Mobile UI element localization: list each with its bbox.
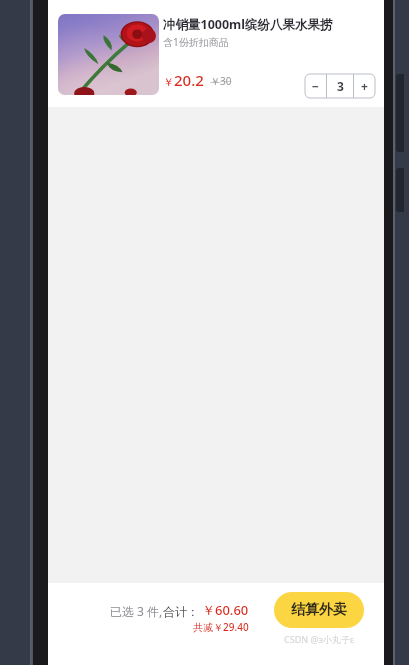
staticText: ￥30: [210, 74, 232, 88]
staticText: ￥: [163, 75, 174, 89]
staticText: 3: [337, 78, 344, 94]
button[interactable]: 结算外卖: [274, 592, 364, 628]
staticText: 已选 3 件,: [110, 603, 163, 619]
staticText: −: [312, 78, 319, 94]
staticText: 合计：: [163, 604, 199, 619]
staticText: 结算外卖: [291, 601, 347, 619]
staticText: CSDN @ɜ小丸子ε: [284, 633, 355, 645]
staticText: 20.2: [174, 70, 204, 90]
staticText: 冲销量1000ml缤纷八果水果捞: [163, 16, 333, 33]
staticText: 含1份折扣商品: [163, 35, 229, 49]
staticText: ￥60.60: [202, 601, 249, 619]
staticText: 共减￥29.40: [193, 620, 249, 634]
button[interactable]: Decrease quantity: [305, 74, 326, 98]
button[interactable]: 冲销量1000ml缤纷八果水果捞: [48, 4, 384, 107]
staticText: +: [361, 78, 368, 94]
button[interactable]: Increase quantity: [354, 74, 375, 98]
